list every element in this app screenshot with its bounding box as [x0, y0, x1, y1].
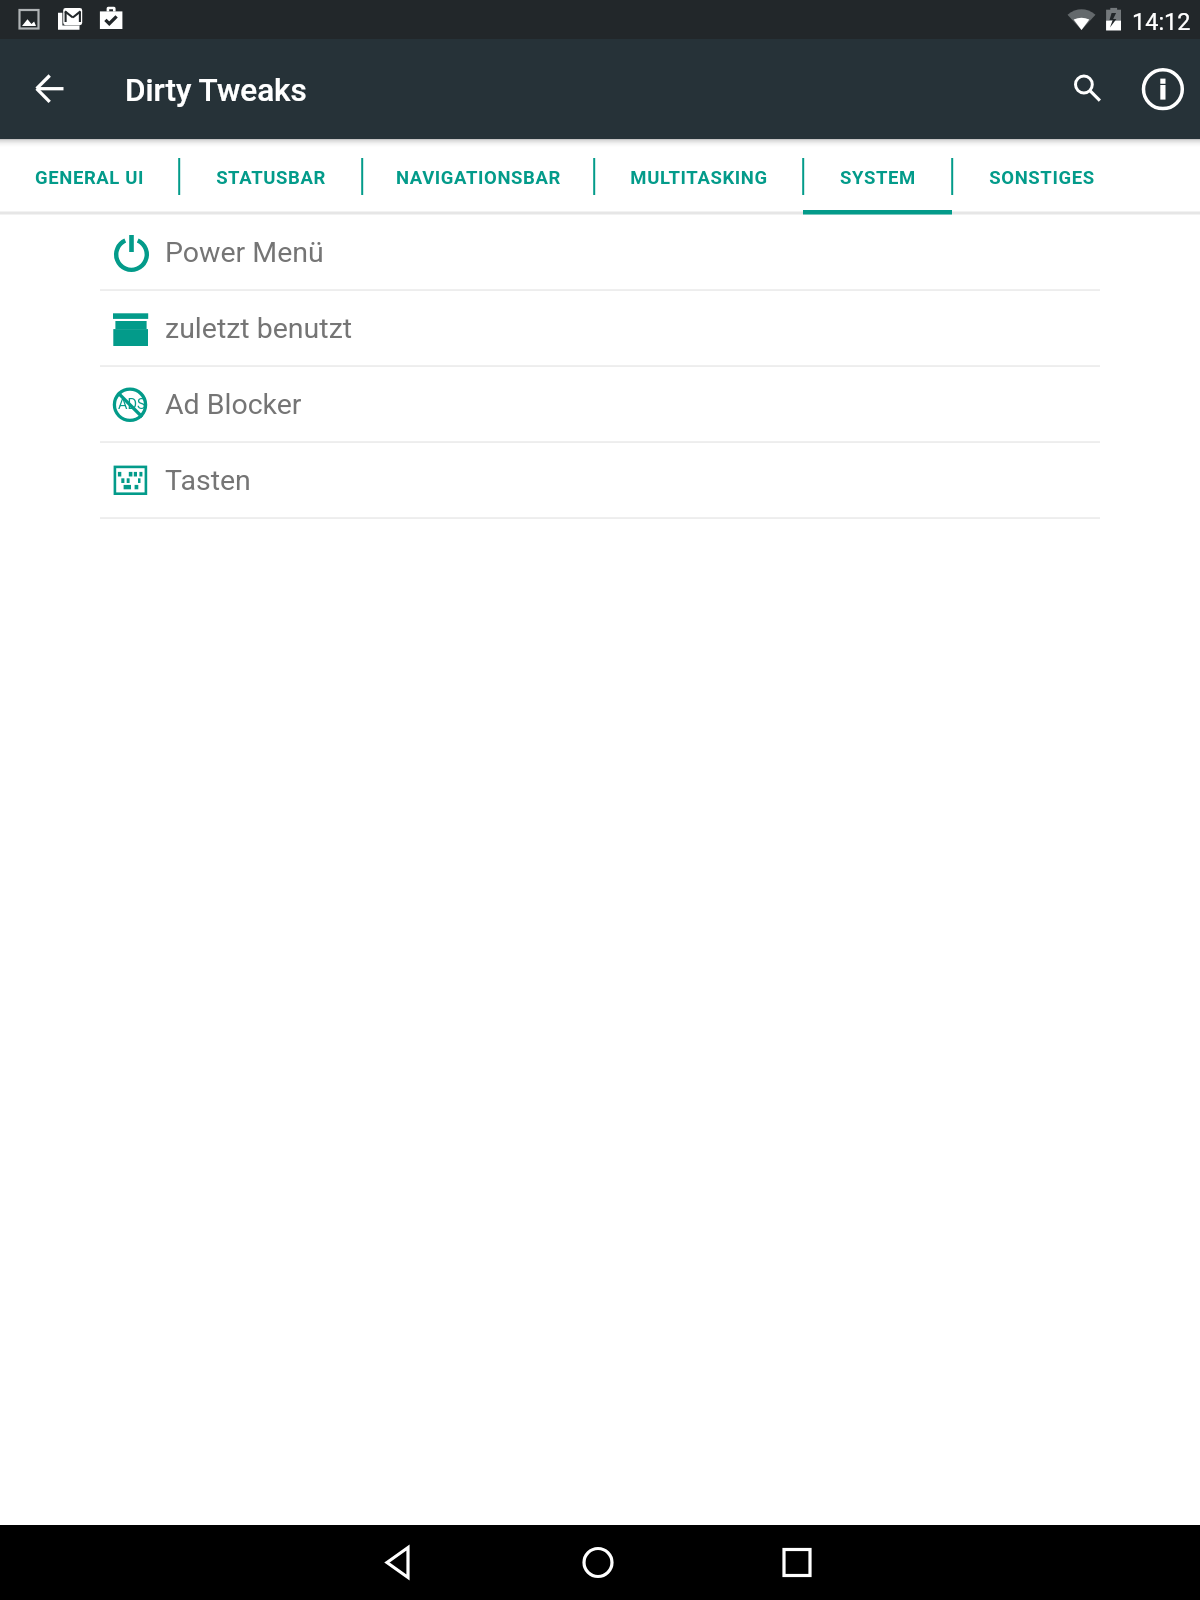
button[interactable]: MULTITASKING — [594, 139, 803, 215]
staticText: Ad Blocker — [165, 388, 302, 421]
staticText: Tasten — [165, 464, 251, 497]
staticText: ADS — [118, 396, 146, 413]
button[interactable]: Tasten — [0, 443, 1200, 519]
staticText: NAVIGATIONSBAR — [396, 167, 561, 189]
staticText: GENERAL UI — [35, 167, 144, 189]
button[interactable]: NAVIGATIONSBAR — [362, 139, 594, 215]
button[interactable]: Recent apps — [737, 1525, 857, 1600]
button[interactable]: Back — [20, 58, 80, 118]
staticText: zuletzt benutzt — [165, 312, 353, 345]
button[interactable]: SONSTIGES — [952, 139, 1131, 215]
button[interactable]: Home — [538, 1525, 658, 1600]
button[interactable]: zuletzt benutzt — [0, 291, 1200, 367]
button[interactable]: Back — [339, 1525, 459, 1600]
staticText: SYSTEM — [840, 167, 916, 189]
button[interactable]: Info — [1133, 54, 1193, 114]
staticText: 14:12 — [1132, 8, 1191, 36]
button[interactable]: Search — [1054, 54, 1114, 114]
staticText: MULTITASKING — [630, 167, 768, 189]
button[interactable]: ADS — [0, 367, 1200, 443]
staticText: Dirty Tweaks — [125, 72, 307, 109]
staticText: STATUSBAR — [216, 167, 326, 189]
staticText: Power Menü — [165, 236, 324, 269]
button[interactable]: GENERAL UI — [0, 139, 179, 215]
button[interactable]: Power Menü — [0, 215, 1200, 291]
button[interactable]: STATUSBAR — [179, 139, 362, 215]
staticText: SONSTIGES — [989, 167, 1095, 189]
button[interactable]: SYSTEM — [803, 139, 952, 215]
